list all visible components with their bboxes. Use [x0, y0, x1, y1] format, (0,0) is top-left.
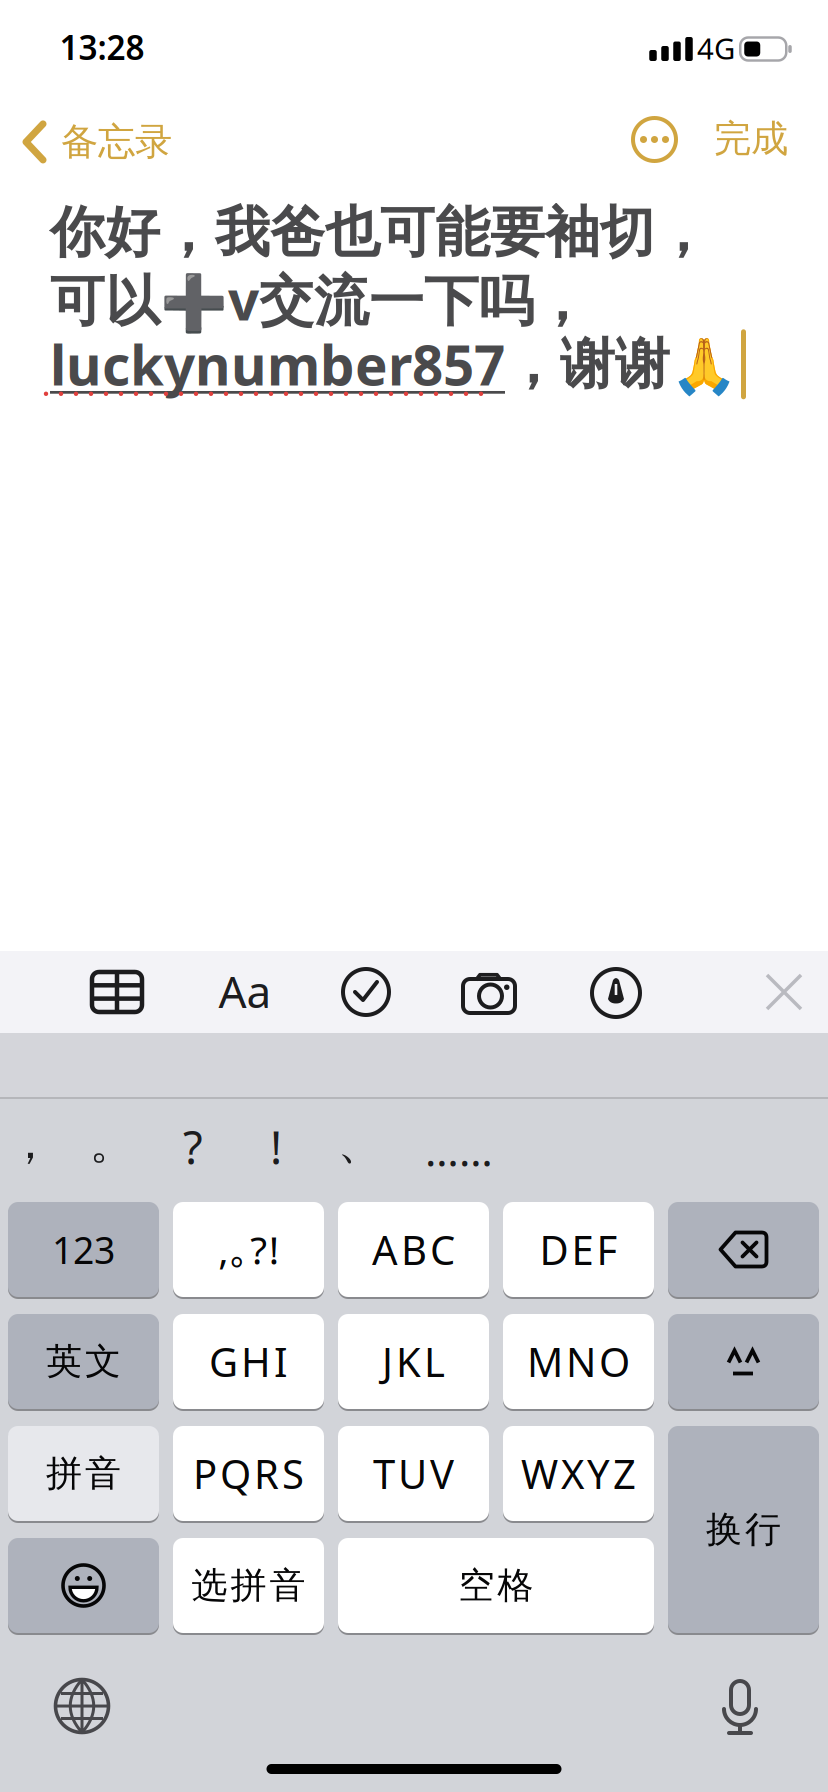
button[interactable]: 更多 — [633, 118, 676, 161]
staticText: 123 — [52, 1225, 115, 1274]
button[interactable]: GHI — [173, 1314, 324, 1409]
staticText: ! — [270, 1117, 282, 1177]
staticText: …… — [425, 1122, 493, 1178]
staticText: luckynumber857 — [50, 328, 505, 401]
staticText: MNO — [527, 1335, 630, 1388]
staticText: 选拼音 — [191, 1563, 305, 1608]
staticText: ， — [7, 1115, 52, 1171]
button[interactable]: ,｡?! — [173, 1202, 324, 1297]
staticText: 。 — [89, 1115, 134, 1171]
staticText: JKL — [382, 1335, 445, 1388]
button[interactable]: 格式 — [218, 962, 271, 1020]
staticText: DEF — [539, 1223, 617, 1276]
button[interactable]: 完成 — [714, 116, 788, 162]
staticText: 备忘录 — [61, 119, 172, 165]
staticText: 、 — [337, 1115, 382, 1171]
staticText: TUV — [373, 1447, 454, 1500]
button[interactable]: 核对清单 — [343, 969, 389, 1015]
button[interactable]: 换行 — [668, 1426, 819, 1633]
staticText: 4G — [697, 28, 735, 67]
button[interactable]: 删除 — [668, 1202, 819, 1297]
staticText: 13:28 — [59, 25, 144, 69]
staticText: 空格 — [458, 1563, 533, 1608]
staticText: Aa — [218, 962, 271, 1020]
staticText: PQRS — [193, 1447, 304, 1500]
staticText: 完成 — [714, 116, 788, 162]
button[interactable]: 切换键盘 — [55, 1679, 108, 1732]
button[interactable]: WXYZ — [503, 1426, 654, 1521]
button[interactable]: 表情 — [8, 1538, 159, 1633]
staticText: ABC — [372, 1223, 455, 1276]
staticText: 英文 — [46, 1339, 121, 1384]
button[interactable]: 标记 — [592, 969, 640, 1017]
button[interactable]: 123 — [8, 1202, 159, 1297]
button[interactable]: 空格 — [338, 1538, 654, 1633]
staticText: ? — [183, 1117, 203, 1177]
staticText: WXYZ — [521, 1447, 636, 1500]
button[interactable]: JKL — [338, 1314, 489, 1409]
button[interactable]: 插入表格 — [92, 972, 142, 1012]
button[interactable]: TUV — [338, 1426, 489, 1521]
staticText: ，谢谢🙏 — [505, 331, 738, 398]
button[interactable]: 备忘录 — [23, 119, 172, 165]
staticText: 你好，我爸也可能要袖切， — [50, 199, 710, 266]
staticText: ,｡?! — [218, 1224, 279, 1275]
staticText: 换行 — [706, 1507, 781, 1552]
button[interactable]: 听写 — [722, 1679, 758, 1735]
button[interactable]: 关闭 — [765, 973, 803, 1011]
button[interactable]: DEF — [503, 1202, 654, 1297]
staticText: 拼音 — [46, 1451, 121, 1496]
button[interactable]: 选拼音 — [173, 1538, 324, 1633]
button[interactable]: 分词 — [668, 1314, 819, 1409]
button[interactable]: ABC — [338, 1202, 489, 1297]
button[interactable]: 拼音 — [8, 1426, 159, 1521]
button[interactable]: MNO — [503, 1314, 654, 1409]
button[interactable]: 拍照 — [463, 973, 515, 1013]
staticText: GHI — [209, 1335, 288, 1388]
button[interactable]: 英文 — [8, 1314, 159, 1409]
staticText: 可以➕v交流一下吗， — [50, 263, 589, 336]
button[interactable]: PQRS — [173, 1426, 324, 1521]
